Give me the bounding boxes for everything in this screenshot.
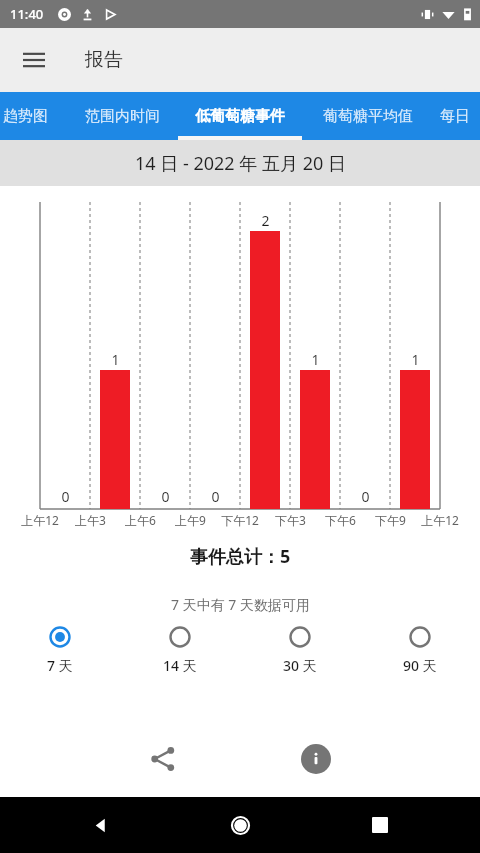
button[interactable]: 范围内时间 [67, 92, 177, 140]
staticText: 上午12 [421, 512, 459, 528]
staticText: 事件总计：5 [190, 544, 291, 569]
staticText: 趋势图 [3, 107, 48, 126]
button[interactable]: Share [139, 735, 187, 783]
button[interactable]: 每日 [420, 92, 480, 140]
button[interactable]: Menu [14, 40, 54, 80]
staticText: 0 [61, 487, 70, 506]
staticText: 下午3 [275, 512, 306, 528]
staticText: 下午12 [221, 512, 259, 528]
button[interactable]: Recents [356, 801, 404, 849]
staticText: 2 [261, 211, 270, 230]
staticText: 下午9 [375, 512, 406, 528]
staticText: 0 [211, 487, 220, 506]
button[interactable]: 趋势图 [0, 92, 70, 140]
staticText: 1 [411, 350, 420, 369]
staticText: 11:40 [10, 5, 44, 23]
staticText: 0 [161, 487, 170, 506]
staticText: 上午9 [175, 512, 206, 528]
staticText: 1 [111, 350, 120, 369]
staticText: 14 天 [163, 656, 197, 675]
staticText: 1 [311, 350, 320, 369]
staticText: 上午3 [75, 512, 106, 528]
staticText: 7 天中有 7 天数据可用 [171, 595, 310, 614]
staticText: 上午12 [21, 512, 59, 528]
staticText: 7 天 [47, 656, 73, 675]
button[interactable]: Info [292, 735, 340, 783]
button[interactable]: 7 天 [0, 626, 120, 675]
staticText: 下午6 [325, 512, 356, 528]
button[interactable]: 30 天 [240, 626, 360, 675]
staticText: 葡萄糖平均值 [323, 107, 413, 126]
button[interactable]: 葡萄糖平均值 [310, 92, 426, 140]
button[interactable]: Back [76, 801, 124, 849]
staticText: 低葡萄糖事件 [195, 107, 285, 126]
staticText: 范围内时间 [85, 107, 160, 126]
staticText: 上午6 [125, 512, 156, 528]
staticText: 30 天 [283, 656, 317, 675]
button[interactable]: Home [216, 801, 264, 849]
staticText: 每日 [440, 107, 470, 126]
staticText: 报告 [85, 48, 123, 72]
button[interactable]: 低葡萄糖事件 [178, 92, 302, 140]
button[interactable]: 90 天 [360, 626, 480, 675]
staticText: 0 [361, 487, 370, 506]
button[interactable]: 14 天 [120, 626, 240, 675]
staticText: 14 日 - 2022 年 五月 20 日 [135, 151, 346, 176]
staticText: 90 天 [403, 656, 437, 675]
